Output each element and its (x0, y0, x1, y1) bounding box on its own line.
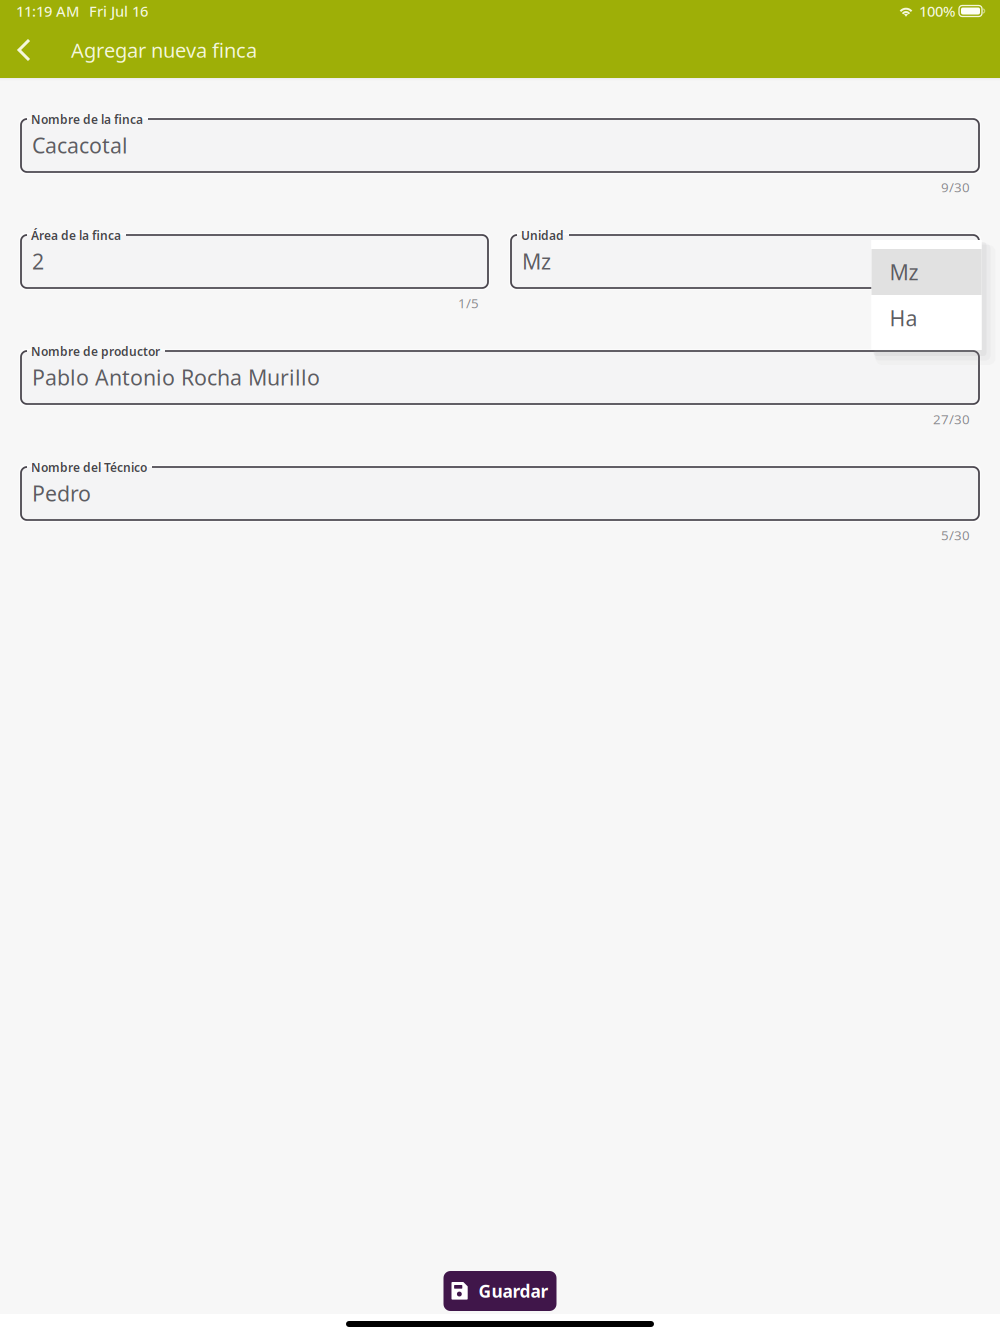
staticText: Nombre de la finca (31, 111, 143, 127)
staticText: 27/30 (933, 410, 970, 428)
staticText: Nombre de productor (31, 343, 160, 359)
staticText: Ha (889, 304, 917, 332)
button[interactable]: 2 (21, 235, 490, 290)
button[interactable]: Ha (871, 295, 981, 341)
button[interactable]: Mz (511, 235, 981, 290)
staticText: Pedro (32, 479, 91, 507)
staticText: Agregar nueva finca (71, 37, 257, 63)
button[interactable]: Pedro (21, 467, 981, 522)
staticText: Fri Jul 16 (89, 1, 148, 21)
staticText: 5/30 (941, 526, 970, 544)
button[interactable]: Pablo Antonio Rocha Murillo (21, 351, 981, 406)
staticText: Pablo Antonio Rocha Murillo (32, 363, 320, 391)
staticText: Mz (889, 258, 918, 286)
staticText: 9/30 (941, 178, 970, 196)
staticText: Unidad (521, 227, 564, 243)
staticText: Nombre del Técnico (31, 459, 147, 475)
staticText: 2 (32, 247, 44, 275)
staticText: Guardar (478, 1279, 548, 1302)
staticText: 1/5 (458, 294, 479, 312)
staticText: Cacacotal (32, 131, 128, 159)
staticText: Área de la finca (31, 227, 121, 243)
staticText: Mz (522, 247, 551, 275)
button[interactable]: Mz (871, 249, 981, 295)
staticText: 100% (919, 1, 955, 21)
button[interactable]: Cacacotal (21, 119, 981, 174)
button[interactable]: Back (2, 28, 46, 72)
staticText: 11:19 AM (16, 1, 79, 21)
button[interactable]: Guardar (443, 1271, 556, 1311)
